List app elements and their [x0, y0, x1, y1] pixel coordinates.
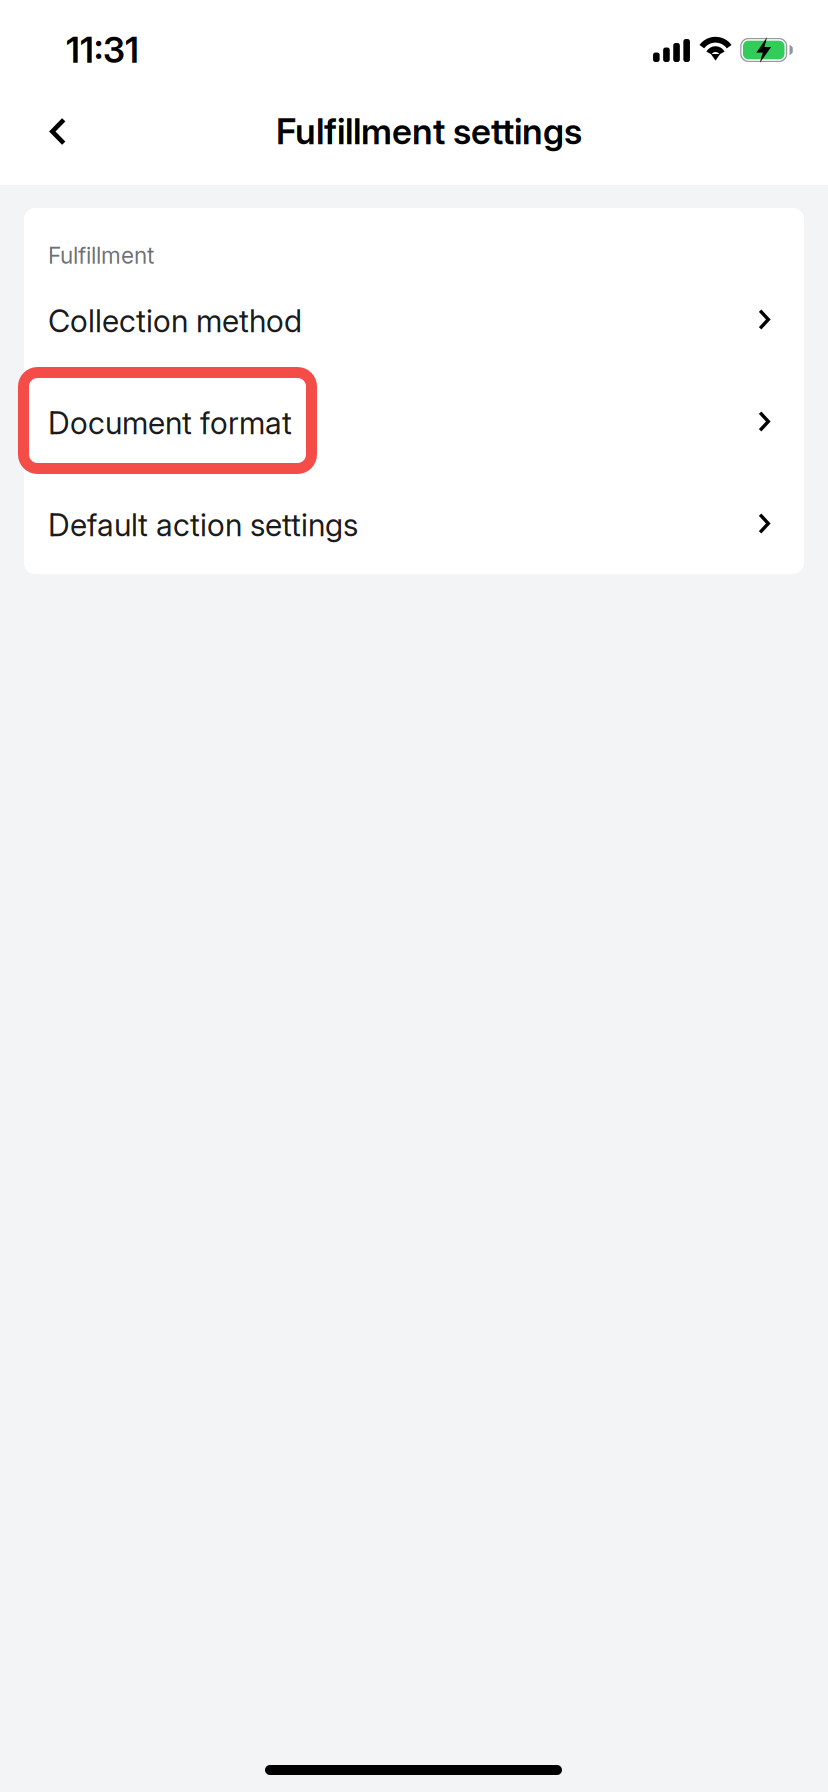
- staticText: Collection method: [48, 302, 302, 339]
- button[interactable]: Document format: [24, 369, 804, 471]
- button[interactable]: Back: [20, 93, 96, 169]
- staticText: Document format: [48, 404, 292, 441]
- staticText: Fulfillment: [48, 242, 154, 269]
- staticText: Fulfillment settings: [276, 110, 582, 153]
- button[interactable]: Default action settings: [24, 471, 804, 573]
- staticText: Default action settings: [48, 506, 358, 543]
- button[interactable]: Collection method: [24, 267, 804, 369]
- staticText: 11:31: [66, 29, 139, 71]
